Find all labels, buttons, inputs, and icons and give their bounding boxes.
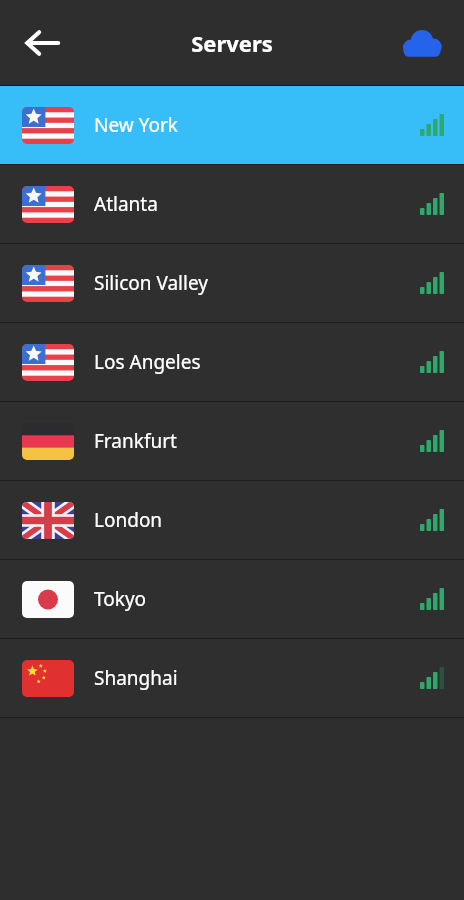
button[interactable]: Frankfurt: [0, 402, 464, 480]
staticText: Tokyo: [94, 586, 147, 612]
button[interactable]: Los Angeles: [0, 323, 464, 401]
button[interactable]: Silicon Valley: [0, 244, 464, 322]
staticText: Los Angeles: [94, 349, 201, 375]
button[interactable]: Cloud: [392, 13, 452, 73]
staticText: New York: [94, 112, 178, 138]
staticText: Frankfurt: [94, 428, 177, 454]
button[interactable]: Shanghai: [0, 639, 464, 717]
button[interactable]: New York: [0, 86, 464, 164]
staticText: Servers: [191, 28, 273, 58]
staticText: London: [94, 507, 163, 533]
staticText: Silicon Valley: [94, 270, 208, 296]
button[interactable]: London: [0, 481, 464, 559]
staticText: Atlanta: [94, 191, 158, 217]
button[interactable]: Tokyo: [0, 560, 464, 638]
button[interactable]: Atlanta: [0, 165, 464, 243]
staticText: Shanghai: [94, 665, 178, 691]
button[interactable]: Back: [10, 11, 74, 75]
